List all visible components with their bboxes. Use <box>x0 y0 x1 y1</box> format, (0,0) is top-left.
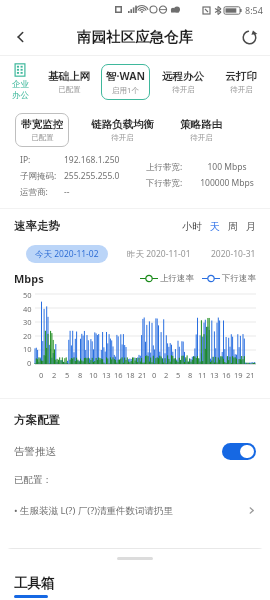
staticText: 策略路由 <box>180 118 222 131</box>
staticText: 子网掩码: <box>20 170 60 182</box>
staticText: -- <box>64 186 70 198</box>
button[interactable]: 昨天 2020-11-01 <box>127 248 191 260</box>
staticText: 运营商: <box>20 186 60 198</box>
staticText: 10 <box>89 370 98 380</box>
staticText: 8 <box>188 370 193 380</box>
staticText: 0 <box>27 358 32 368</box>
staticText: 云打印 <box>225 70 257 83</box>
button[interactable]: 带宽监控 <box>15 113 69 147</box>
staticText: 13 <box>102 370 111 380</box>
staticText: 18 <box>126 370 135 380</box>
staticText: 南园社区应急仓库 <box>77 28 193 46</box>
staticText: 100 Mbps <box>196 161 258 173</box>
staticText: • 生服装滋 L(?) 厂(?)清重件数词请扔里 <box>14 504 174 517</box>
staticText: 企业 <box>12 79 29 90</box>
button[interactable]: 周 <box>228 220 238 233</box>
staticText: 40 <box>23 304 32 314</box>
staticText: 5 <box>65 370 70 380</box>
staticText: 30 <box>23 317 32 327</box>
staticText: 8 <box>78 370 83 380</box>
staticText: 10 <box>23 344 32 354</box>
staticText: 已配置 <box>58 85 81 94</box>
staticText: 192.168.1.250 <box>64 154 120 166</box>
button[interactable]: 企业 <box>0 56 40 108</box>
staticText: 带宽监控 <box>21 118 63 131</box>
staticText: 0 <box>152 370 157 380</box>
button[interactable]: • 生服装滋 L(?) 厂(?)清重件数词请扔里 <box>0 504 270 517</box>
staticText: IP: <box>20 154 60 166</box>
staticText: 255.255.255.0 <box>64 170 120 182</box>
staticText: 20 <box>23 331 32 341</box>
staticText: 16 <box>114 370 123 380</box>
staticText: 启用1个 <box>112 85 139 95</box>
button[interactable]: Refresh <box>235 23 263 51</box>
button[interactable]: 基础上网 <box>43 65 95 99</box>
staticText: 8:54 <box>245 4 263 16</box>
button[interactable]: 天 <box>210 220 220 233</box>
staticText: 远程办公 <box>162 70 204 83</box>
button[interactable]: Alarm push toggle <box>222 443 256 460</box>
button[interactable]: 今天 2020-11-02 <box>26 245 108 263</box>
staticText: 0 <box>39 370 44 380</box>
staticText: 待开启 <box>190 133 213 142</box>
button[interactable]: 云打印 <box>220 65 262 99</box>
button[interactable]: 下行速率 <box>202 273 256 284</box>
staticText: 21 <box>138 370 147 380</box>
staticText: 5 <box>176 370 181 380</box>
button[interactable]: Back <box>6 22 36 52</box>
staticText: 链路负载均衡 <box>91 118 154 131</box>
staticText: 智·WAN <box>106 69 145 83</box>
staticText: 方案配置 <box>14 413 60 427</box>
staticText: 已配置： <box>14 474 52 486</box>
staticText: 100000 Mbps <box>196 177 258 189</box>
staticText: 已配置 <box>31 133 54 142</box>
button[interactable]: 小时 <box>182 220 202 233</box>
button[interactable]: 策略路由 <box>174 113 228 147</box>
staticText: 19 <box>234 370 243 380</box>
staticText: 基础上网 <box>48 70 90 83</box>
button[interactable]: 智·WAN <box>101 64 150 100</box>
staticText: 2 <box>52 370 57 380</box>
staticText: 上行带宽: <box>146 161 192 173</box>
staticText: Mbps <box>14 271 44 286</box>
staticText: 11 <box>198 370 207 380</box>
staticText: 2 <box>164 370 169 380</box>
button[interactable]: 远程办公 <box>157 65 209 99</box>
staticText: 21 <box>246 370 255 380</box>
button[interactable]: 上行速率 <box>140 273 194 284</box>
staticText: 下行带宽: <box>146 177 192 189</box>
staticText: 13 <box>210 370 219 380</box>
staticText: 16 <box>222 370 231 380</box>
staticText: 告警推送 <box>14 445 56 458</box>
staticText: 今天 2020-11-02 <box>35 248 99 260</box>
staticText: 50 <box>23 290 32 300</box>
staticText: 待开启 <box>172 85 195 94</box>
staticText: 速率走势 <box>14 219 60 233</box>
staticText: 待开启 <box>230 85 253 94</box>
button[interactable]: 2020-10-31 <box>211 248 256 260</box>
staticText: 办公 <box>12 90 29 101</box>
staticText: 待开启 <box>111 133 134 142</box>
button[interactable]: 告警推送 <box>0 443 270 460</box>
staticText: 上行速率 <box>160 273 194 284</box>
button[interactable]: 工具箱 <box>14 575 55 592</box>
staticText: 下行速率 <box>222 273 256 284</box>
button[interactable]: 链路负载均衡 <box>85 113 160 147</box>
button[interactable]: 月 <box>246 220 256 233</box>
